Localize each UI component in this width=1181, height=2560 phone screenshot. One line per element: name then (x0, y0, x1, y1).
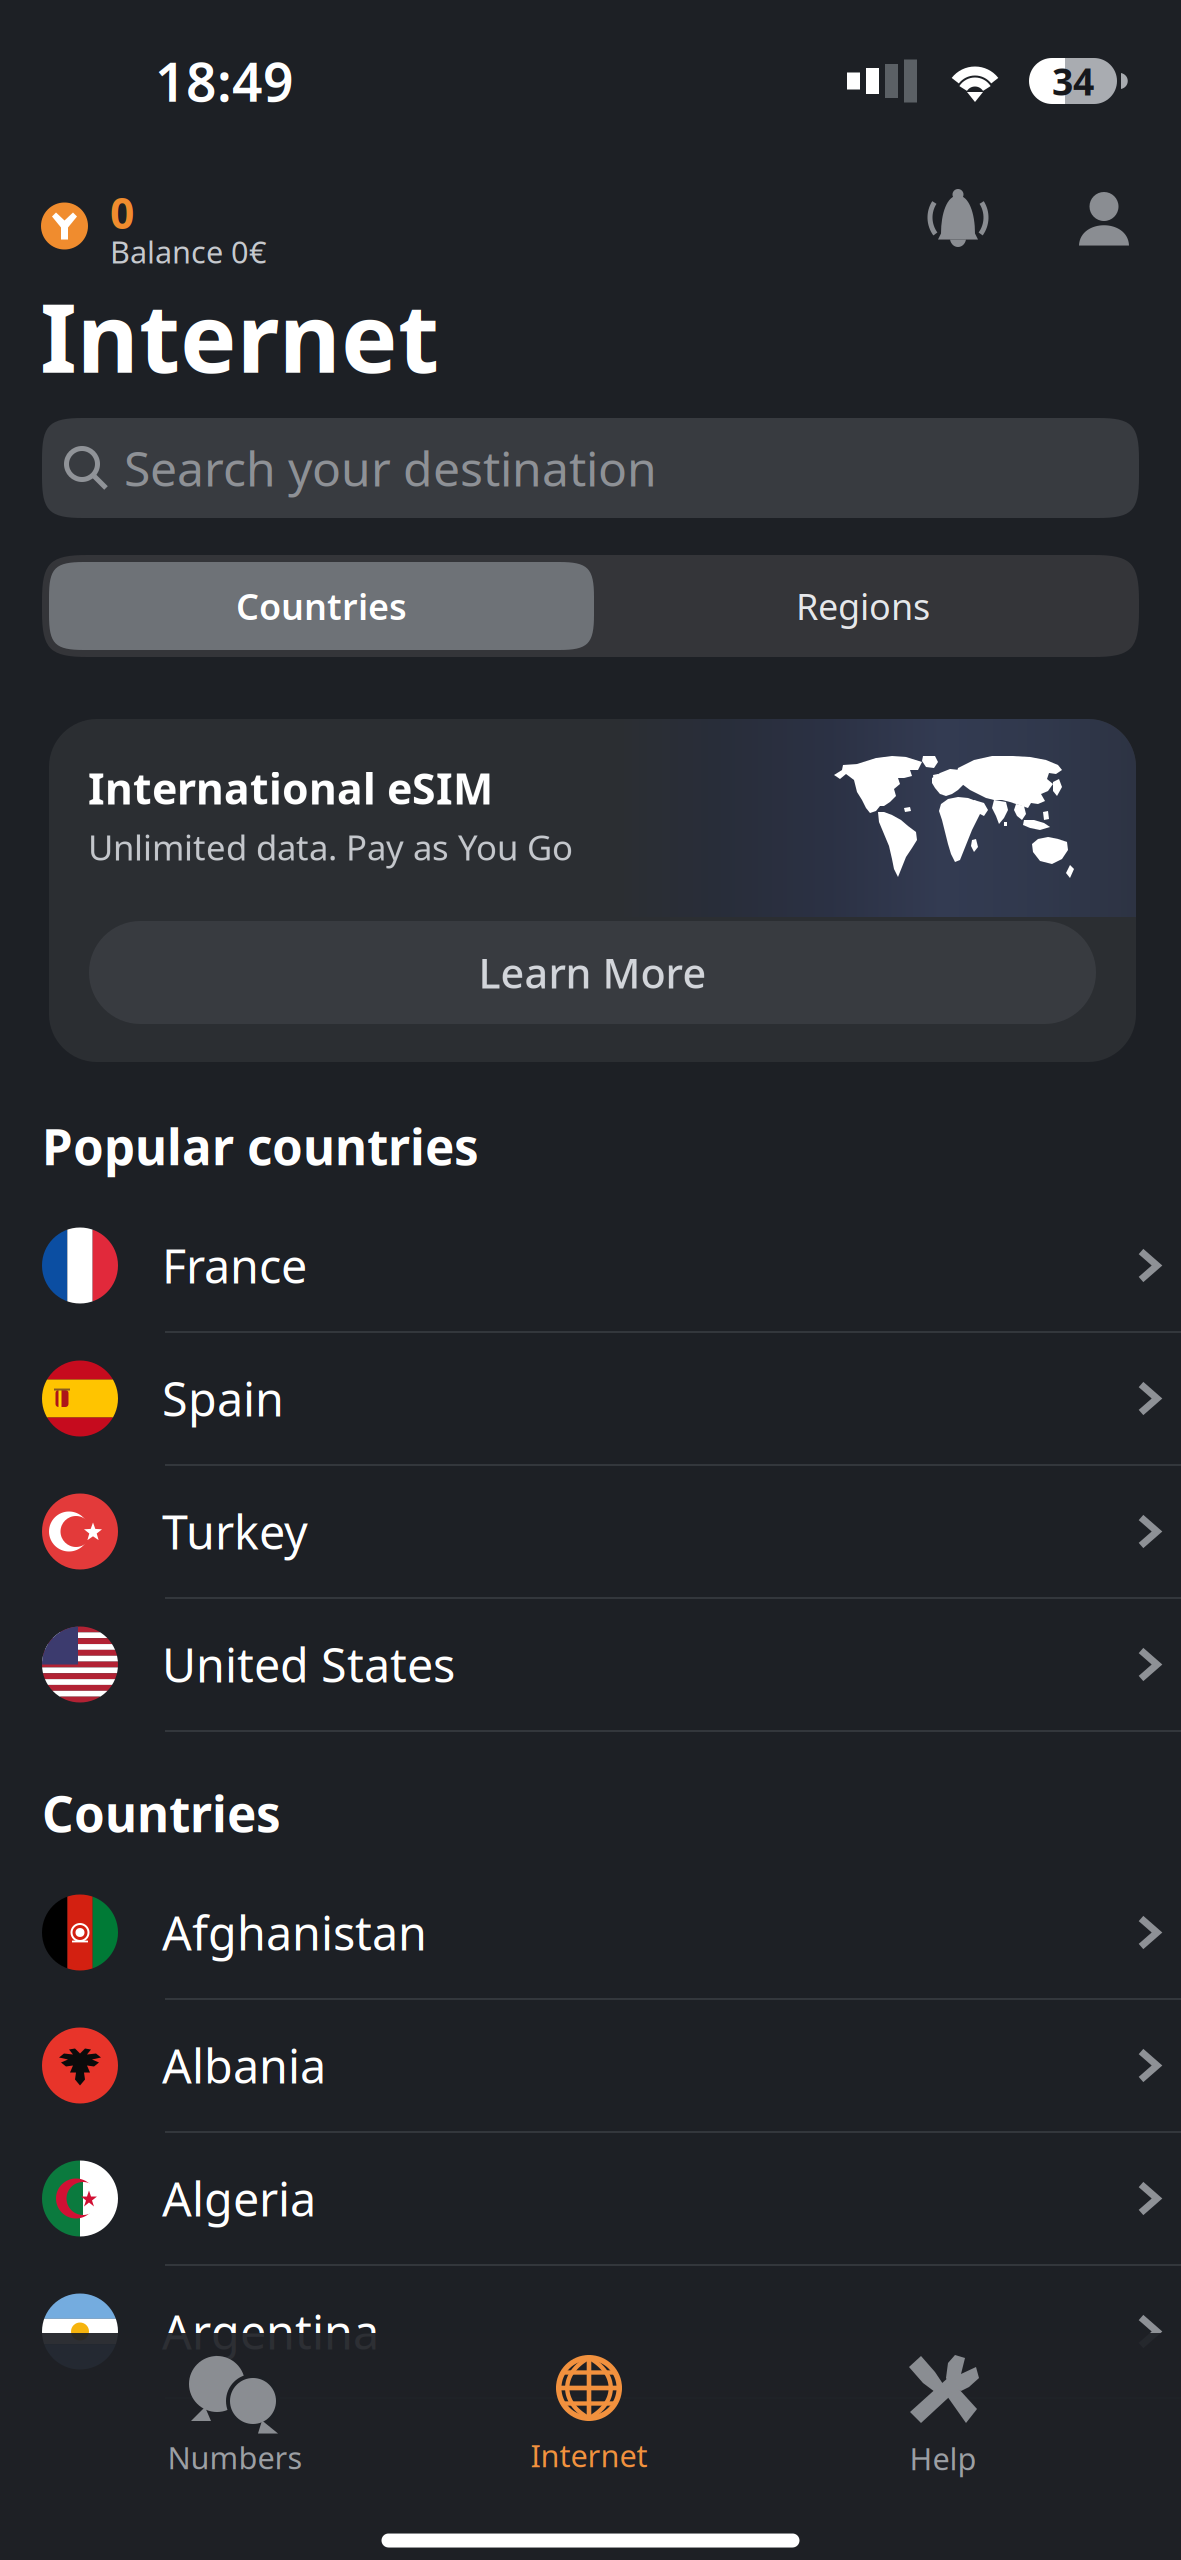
staticText: Unlimited data. Pay as You Go (88, 824, 573, 870)
staticText: Internet (40, 273, 439, 399)
staticText: Afghanistan (162, 1901, 427, 1963)
staticText: United States (162, 1633, 455, 1695)
staticText: Popular countries (42, 1113, 479, 1179)
button[interactable]: Turkey (0, 1466, 1181, 1599)
button[interactable]: 0 (0, 152, 410, 272)
staticText: Numbers (167, 2437, 302, 2478)
button[interactable]: Argentina (0, 2266, 1181, 2399)
button[interactable]: Countries (49, 562, 594, 650)
button[interactable]: Internet (412, 2333, 766, 2493)
staticText: France (162, 1234, 307, 1296)
staticText: Argentina (162, 2300, 379, 2362)
staticText: Albania (162, 2034, 326, 2096)
staticText: Countries (42, 1780, 281, 1846)
button[interactable]: Afghanistan (0, 1867, 1181, 2000)
staticText: International eSIM (88, 760, 493, 816)
button[interactable]: United States (0, 1599, 1181, 1732)
staticText: Learn More (478, 945, 706, 1000)
staticText: Regions (796, 582, 930, 630)
button[interactable]: Regions (594, 562, 1132, 650)
staticText: Turkey (162, 1500, 308, 1562)
button[interactable]: France (0, 1200, 1181, 1333)
button[interactable]: Profile (1043, 152, 1165, 272)
staticText: Countries (236, 582, 407, 630)
button[interactable]: Numbers (58, 2333, 412, 2493)
button[interactable]: Search your destination (0, 409, 1181, 527)
button[interactable]: Help (766, 2333, 1120, 2493)
button[interactable]: Algeria (0, 2133, 1181, 2266)
button[interactable]: Notifications (873, 152, 1043, 272)
button[interactable]: Spain (0, 1333, 1181, 1466)
button[interactable]: Learn More (89, 921, 1096, 1024)
button[interactable]: Albania (0, 2000, 1181, 2133)
staticText: 34 (1052, 56, 1094, 106)
staticText: Balance 0€ (110, 231, 267, 272)
staticText: Search your destination (124, 436, 657, 500)
staticText: Algeria (162, 2167, 316, 2229)
staticText: Internet (530, 2435, 647, 2476)
staticText: 18:49 (155, 46, 294, 116)
staticText: Spain (162, 1367, 284, 1429)
staticText: 0 (110, 184, 134, 241)
staticText: Help (909, 2438, 976, 2479)
